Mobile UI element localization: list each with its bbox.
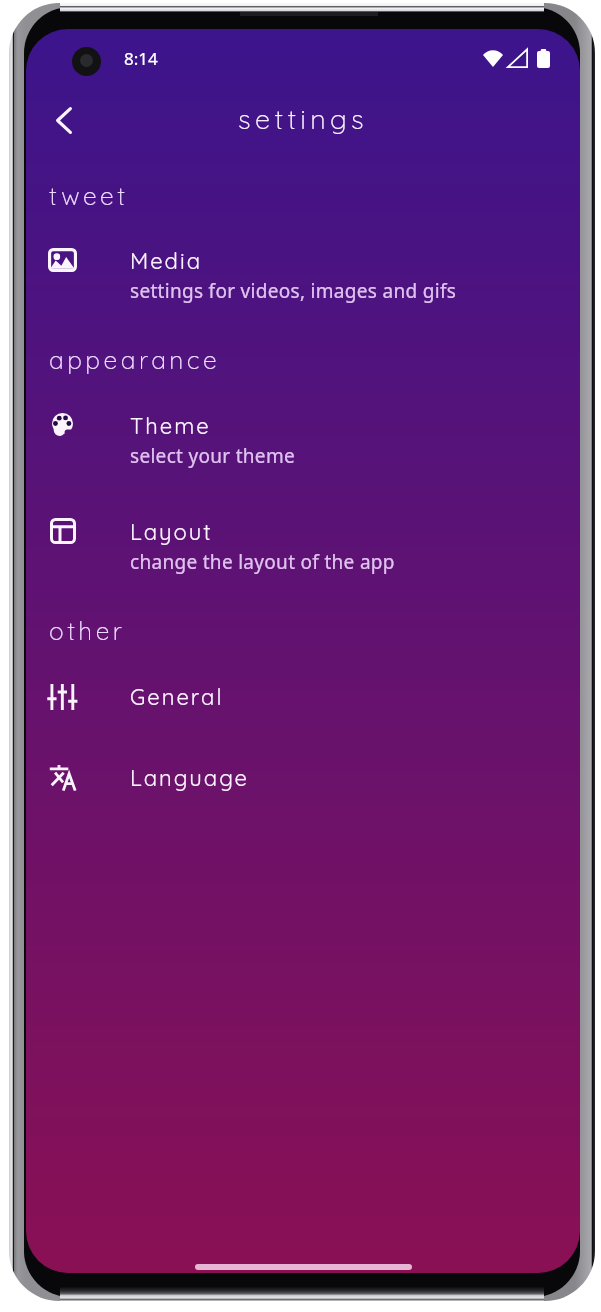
button[interactable]: Layout [26, 518, 580, 596]
staticText: change the layout of the app [130, 549, 395, 575]
staticText: 8:14 [124, 47, 158, 70]
staticText: General [130, 683, 224, 711]
button[interactable]: Back [44, 100, 84, 140]
staticText: tweet [49, 180, 129, 211]
staticText: other [49, 615, 126, 646]
staticText: Layout [130, 518, 213, 546]
button[interactable]: General [26, 683, 580, 741]
staticText: settings for videos, images and gifs [130, 278, 457, 304]
staticText: appearance [49, 344, 221, 375]
staticText: select your theme [130, 443, 295, 469]
button[interactable]: Media [26, 247, 580, 325]
staticText: Language [130, 764, 249, 792]
staticText: Theme [130, 412, 211, 440]
staticText: settings [26, 102, 580, 136]
staticText: Media [130, 247, 202, 275]
button[interactable]: Language [26, 764, 580, 822]
button[interactable]: Theme [26, 412, 580, 490]
